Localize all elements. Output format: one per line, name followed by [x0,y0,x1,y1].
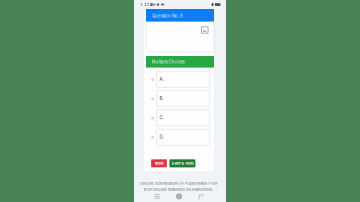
button[interactable]: D. [151,129,210,145]
button[interactable]: A. [151,71,210,87]
staticText: Save & Next [171,161,193,166]
button[interactable]: Save & Next [169,159,195,167]
button[interactable]: C. [151,110,210,126]
staticText: B. [159,96,163,101]
staticText: D. [159,134,163,140]
staticText: C. [159,115,163,120]
button[interactable]: Recent apps [154,193,160,199]
staticText: A. [159,76,163,82]
staticText: Question No. 8 [152,13,183,18]
staticText: BOP ONLINE TERM END EXAMINATION [143,187,212,192]
staticText: Reset [154,161,163,166]
button[interactable]: Back [199,193,204,199]
staticText: Multiple Choices [151,59,184,64]
staticText: ONLINE SUBMISSION OF ASSIGNMENT FOR [140,181,217,186]
button[interactable]: Reset [151,159,167,167]
button[interactable]: B. [151,91,210,107]
button[interactable]: Home [176,193,182,200]
